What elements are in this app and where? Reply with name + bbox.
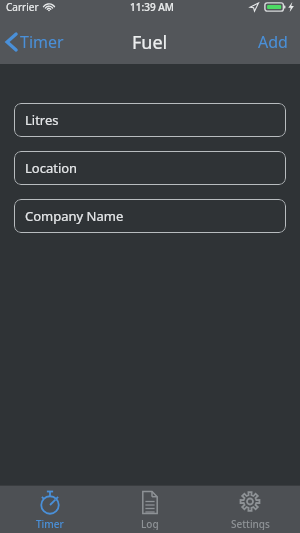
button[interactable]: Settings — [200, 486, 300, 533]
button[interactable]: Log — [100, 486, 200, 533]
staticText: Location — [25, 159, 78, 177]
staticText: Add — [258, 31, 288, 53]
button[interactable]: Location — [14, 151, 286, 185]
staticText: Litres — [25, 111, 59, 129]
button[interactable]: Litres — [14, 103, 286, 137]
staticText: Log — [141, 517, 159, 530]
button[interactable]: Timer — [0, 25, 74, 59]
staticText: Company Name — [25, 207, 124, 225]
button[interactable]: Company Name — [14, 199, 286, 233]
staticText: Carrier — [6, 0, 39, 14]
staticText: 11:39 AM — [130, 0, 174, 14]
button[interactable]: Timer — [0, 486, 100, 533]
staticText: Fuel — [132, 30, 168, 55]
button[interactable]: Add — [246, 23, 300, 61]
staticText: Timer — [20, 31, 64, 53]
staticText: Timer — [36, 517, 64, 530]
staticText: Settings — [231, 517, 270, 530]
